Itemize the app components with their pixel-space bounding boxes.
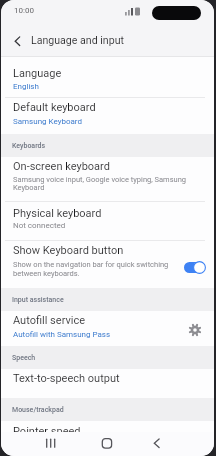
staticText: Pointer speed <box>13 425 81 438</box>
staticText: Samsung Keyboard <box>13 117 82 126</box>
staticText: Mouse/trackpad <box>12 406 64 414</box>
staticText: Physical keyboard <box>13 207 102 220</box>
staticText: Default keyboard <box>13 101 96 114</box>
staticText: Samsung voice input, Google voice typing… <box>13 175 187 192</box>
staticText: 10:00 <box>14 6 34 15</box>
staticText: Input assistance <box>12 296 64 304</box>
staticText: Language and input <box>31 34 124 46</box>
staticText: English <box>13 82 39 91</box>
staticText: Language <box>13 67 62 80</box>
button[interactable]: Default keyboard <box>1 98 214 134</box>
button[interactable] <box>143 432 214 456</box>
button[interactable] <box>1 432 72 456</box>
staticText: Autofill with Samsung Pass <box>13 330 111 339</box>
button[interactable]: Show Keyboard button <box>1 241 214 288</box>
button[interactable] <box>184 260 206 274</box>
button[interactable]: Autofill service <box>1 311 214 346</box>
button[interactable]: On-screen keyboard <box>1 157 214 201</box>
staticText: Show Keyboard button <box>13 244 124 257</box>
staticText: On-screen keyboard <box>13 160 110 173</box>
button[interactable]: Text-to-speech output <box>1 369 214 398</box>
staticText: Text-to-speech output <box>13 372 120 385</box>
button[interactable]: Language <box>1 57 214 97</box>
staticText: Speech <box>12 354 36 362</box>
staticText: Keyboards <box>12 142 46 150</box>
staticText: Not connected <box>13 221 66 230</box>
staticText: Autofill service <box>13 314 86 327</box>
staticText: Show on the navigation bar for quick swi… <box>13 260 169 278</box>
button[interactable]: Pointer speed <box>1 421 214 456</box>
button[interactable] <box>9 37 214 57</box>
button[interactable] <box>72 432 143 456</box>
button[interactable]: Physical keyboard <box>1 202 214 240</box>
